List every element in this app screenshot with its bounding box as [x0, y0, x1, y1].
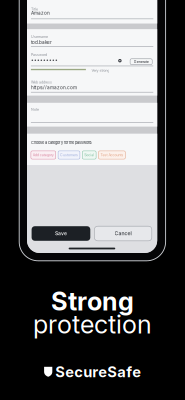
staticText: Save	[55, 230, 67, 236]
button[interactable]: Test Accounts	[98, 151, 125, 159]
button[interactable]: Customers	[58, 151, 80, 159]
button[interactable]: Generate	[130, 59, 152, 65]
staticText: Add category	[33, 153, 54, 157]
staticText: Amazon	[31, 10, 50, 16]
staticText: Username	[31, 35, 48, 39]
staticText: Cancel	[115, 230, 132, 236]
button[interactable]: Show password	[117, 58, 123, 63]
staticText: •••••••••	[31, 57, 58, 62]
staticText: Strong	[51, 286, 134, 317]
staticText: Customers	[60, 153, 78, 157]
button[interactable]: Add category	[31, 151, 56, 159]
staticText: Generate	[134, 59, 149, 64]
staticText: Note	[31, 107, 39, 112]
button[interactable]: Save	[32, 226, 90, 241]
staticText: SecureSafe	[55, 363, 141, 381]
staticText: Social	[84, 153, 94, 157]
staticText: Test Accounts	[100, 153, 123, 157]
staticText: Very strong	[91, 68, 109, 73]
staticText: https://amazon.com	[31, 85, 77, 90]
staticText: Choose a category for the password:	[31, 140, 92, 145]
staticText: tod.baker	[31, 39, 52, 45]
staticText: protection	[33, 309, 152, 340]
button[interactable]: Cancel	[94, 226, 152, 241]
staticText: Title	[31, 7, 38, 11]
staticText: Password	[31, 52, 47, 57]
staticText: Web address	[31, 80, 52, 84]
button[interactable]: Social	[82, 151, 96, 159]
